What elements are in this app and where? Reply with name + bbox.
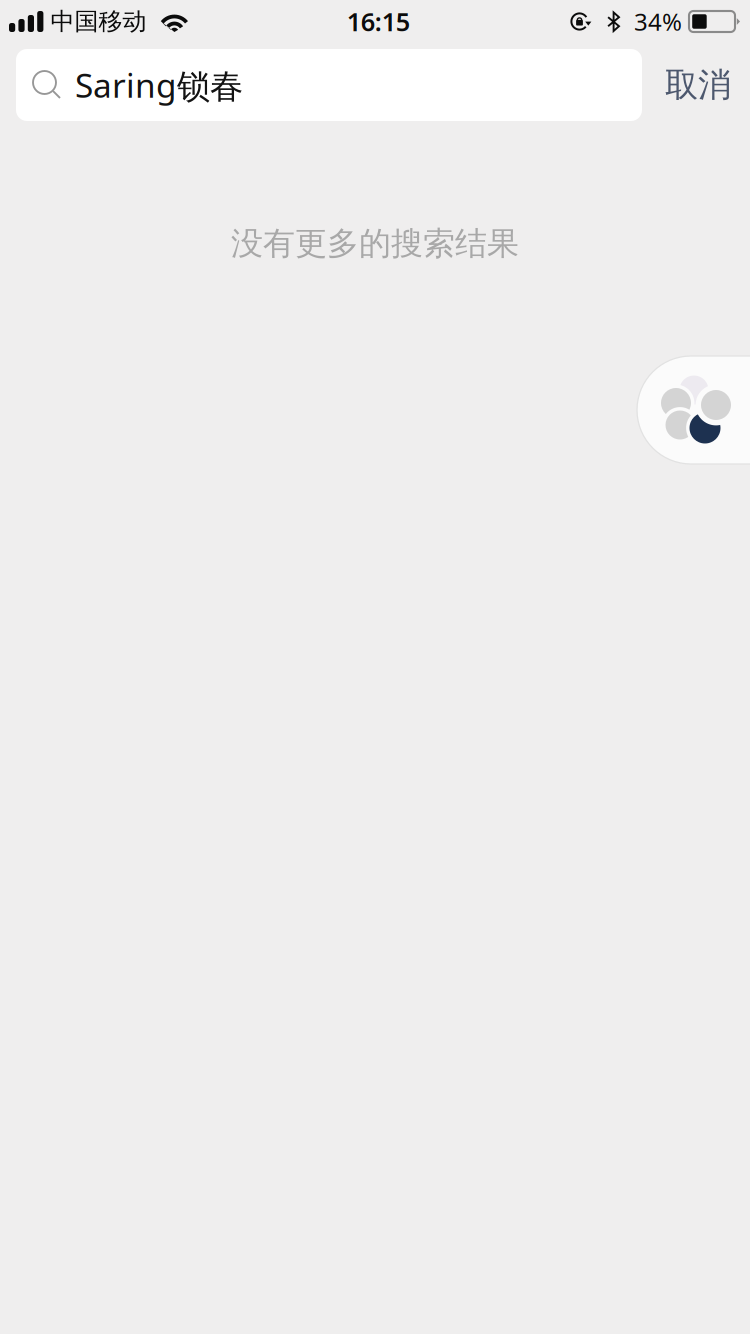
button[interactable]: Assistant: [637, 356, 750, 464]
staticText: 34%: [634, 6, 682, 37]
staticText: 16:15: [347, 5, 410, 38]
staticText: 中国移动: [50, 7, 146, 36]
staticText: 没有更多的搜索结果: [231, 224, 519, 263]
button[interactable]: Saring锁春: [16, 49, 642, 121]
staticText: 取消: [665, 64, 731, 105]
staticText: Saring锁春: [75, 63, 243, 107]
button[interactable]: 取消: [652, 49, 744, 121]
